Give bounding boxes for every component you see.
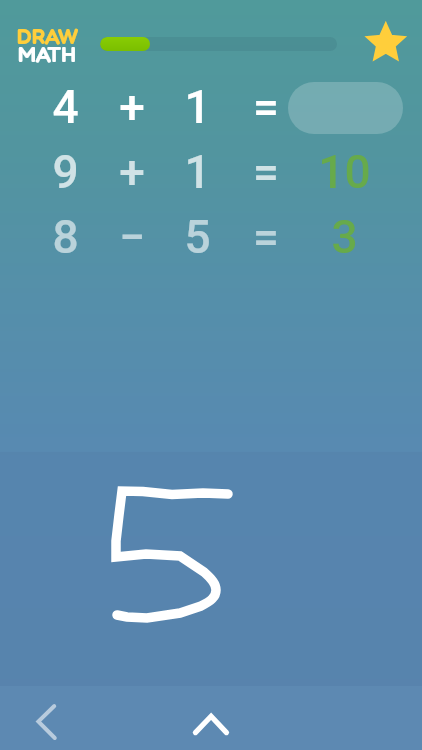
staticText: 8 (52, 210, 79, 264)
staticText: − (119, 210, 145, 264)
staticText: = (253, 210, 279, 264)
button[interactable]: Home (187, 690, 235, 746)
staticText: 9 (52, 145, 79, 199)
staticText: 5 (184, 210, 211, 264)
staticText: + (119, 145, 145, 199)
staticText: = (253, 80, 279, 134)
staticText: 1 (184, 80, 211, 134)
button[interactable]: Back (24, 690, 64, 746)
button[interactable]: DRAW (14, 22, 80, 68)
staticText: = (253, 145, 279, 199)
button[interactable]: Stars (360, 16, 410, 66)
staticText: 1 (184, 145, 211, 199)
staticText: 10 (318, 145, 371, 199)
staticText: DRAW (17, 23, 79, 50)
button[interactable] (288, 82, 403, 134)
staticText: 4 (52, 80, 79, 134)
staticText: 3 (331, 210, 358, 264)
staticText: + (119, 80, 145, 134)
staticText: MATH (18, 41, 76, 68)
